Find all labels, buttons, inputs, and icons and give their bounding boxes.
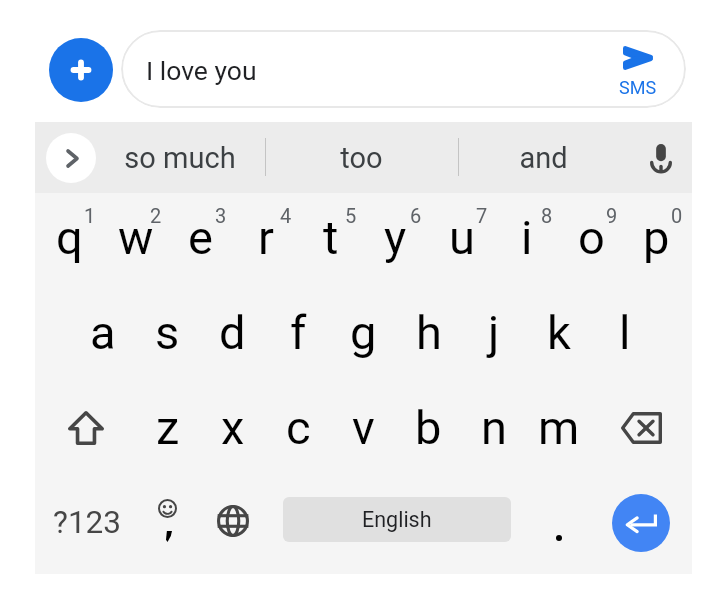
button[interactable]: p xyxy=(624,190,689,285)
staticText: 6 xyxy=(410,204,422,227)
staticText: and xyxy=(519,141,568,175)
staticText: h xyxy=(416,305,442,360)
button[interactable]: g xyxy=(331,285,396,380)
staticText: 3 xyxy=(215,204,227,227)
button[interactable]: a xyxy=(70,285,135,380)
button[interactable]: u xyxy=(429,190,494,285)
staticText: 4 xyxy=(280,204,292,227)
button[interactable]: Send SMS xyxy=(599,30,677,108)
staticText: p xyxy=(643,210,670,265)
button[interactable]: t xyxy=(298,190,363,285)
staticText: I love you xyxy=(146,55,257,86)
staticText: x xyxy=(221,400,245,455)
button[interactable]: Change language xyxy=(197,475,269,570)
button[interactable]: i xyxy=(494,190,559,285)
staticText: 9 xyxy=(606,204,618,227)
staticText: i xyxy=(521,210,533,265)
staticText: so much xyxy=(124,141,236,175)
button[interactable]: too xyxy=(265,122,457,193)
staticText: b xyxy=(415,400,442,455)
staticText: c xyxy=(286,400,311,455)
button[interactable] xyxy=(529,475,589,570)
staticText: 7 xyxy=(476,204,488,227)
staticText: o xyxy=(578,210,605,265)
button[interactable]: x xyxy=(200,380,265,475)
button[interactable] xyxy=(121,30,686,108)
staticText: r xyxy=(258,210,274,265)
staticText: j xyxy=(488,305,500,360)
staticText: SMS xyxy=(619,77,657,98)
button[interactable]: m xyxy=(526,380,591,475)
button[interactable]: Voice input xyxy=(628,122,694,193)
staticText: z xyxy=(156,400,180,455)
staticText: too xyxy=(340,141,383,175)
staticText: m xyxy=(538,400,580,455)
staticText: v xyxy=(352,400,375,455)
button[interactable]: Emoji and comma xyxy=(138,475,197,570)
button[interactable]: Expand suggestions xyxy=(46,133,96,183)
button[interactable]: o xyxy=(559,190,624,285)
button[interactable]: k xyxy=(526,285,591,380)
button[interactable]: y xyxy=(363,190,428,285)
staticText: w xyxy=(118,210,154,265)
button[interactable]: d xyxy=(200,285,265,380)
staticText: a xyxy=(90,305,116,360)
button[interactable]: l xyxy=(592,285,657,380)
staticText: q xyxy=(56,210,83,265)
button[interactable]: English xyxy=(283,497,511,542)
button[interactable]: Enter xyxy=(589,475,692,570)
staticText: l xyxy=(619,305,631,360)
button[interactable]: so much xyxy=(100,122,260,193)
staticText: s xyxy=(155,305,180,360)
button[interactable]: q xyxy=(37,190,102,285)
staticText: n xyxy=(481,400,507,455)
button[interactable]: e xyxy=(168,190,233,285)
button[interactable]: f xyxy=(266,285,331,380)
staticText: u xyxy=(449,210,475,265)
button[interactable]: Shift xyxy=(37,380,135,475)
staticText: 2 xyxy=(150,204,162,227)
button[interactable]: s xyxy=(135,285,200,380)
button[interactable]: w xyxy=(103,190,168,285)
button[interactable]: ?123 xyxy=(35,475,138,570)
staticText: f xyxy=(290,305,307,360)
staticText: English xyxy=(362,507,432,532)
staticText: 5 xyxy=(345,204,357,227)
staticText: 8 xyxy=(541,204,553,227)
button[interactable]: Add attachment xyxy=(49,38,113,102)
button[interactable]: j xyxy=(461,285,526,380)
button[interactable]: r xyxy=(233,190,298,285)
staticText: y xyxy=(384,210,407,265)
staticText: ?123 xyxy=(53,504,121,541)
staticText: t xyxy=(323,210,339,265)
button[interactable]: b xyxy=(396,380,461,475)
staticText: e xyxy=(188,210,213,265)
staticText: 0 xyxy=(671,204,683,227)
button[interactable]: v xyxy=(331,380,396,475)
button[interactable]: Backspace xyxy=(592,380,690,475)
button[interactable]: h xyxy=(396,285,461,380)
staticText: d xyxy=(219,305,246,360)
button[interactable]: z xyxy=(135,380,200,475)
staticText: g xyxy=(350,305,377,360)
staticText: k xyxy=(547,305,571,360)
button[interactable]: and xyxy=(458,122,628,193)
staticText: 1 xyxy=(84,204,96,227)
button[interactable]: n xyxy=(461,380,526,475)
button[interactable]: c xyxy=(266,380,331,475)
